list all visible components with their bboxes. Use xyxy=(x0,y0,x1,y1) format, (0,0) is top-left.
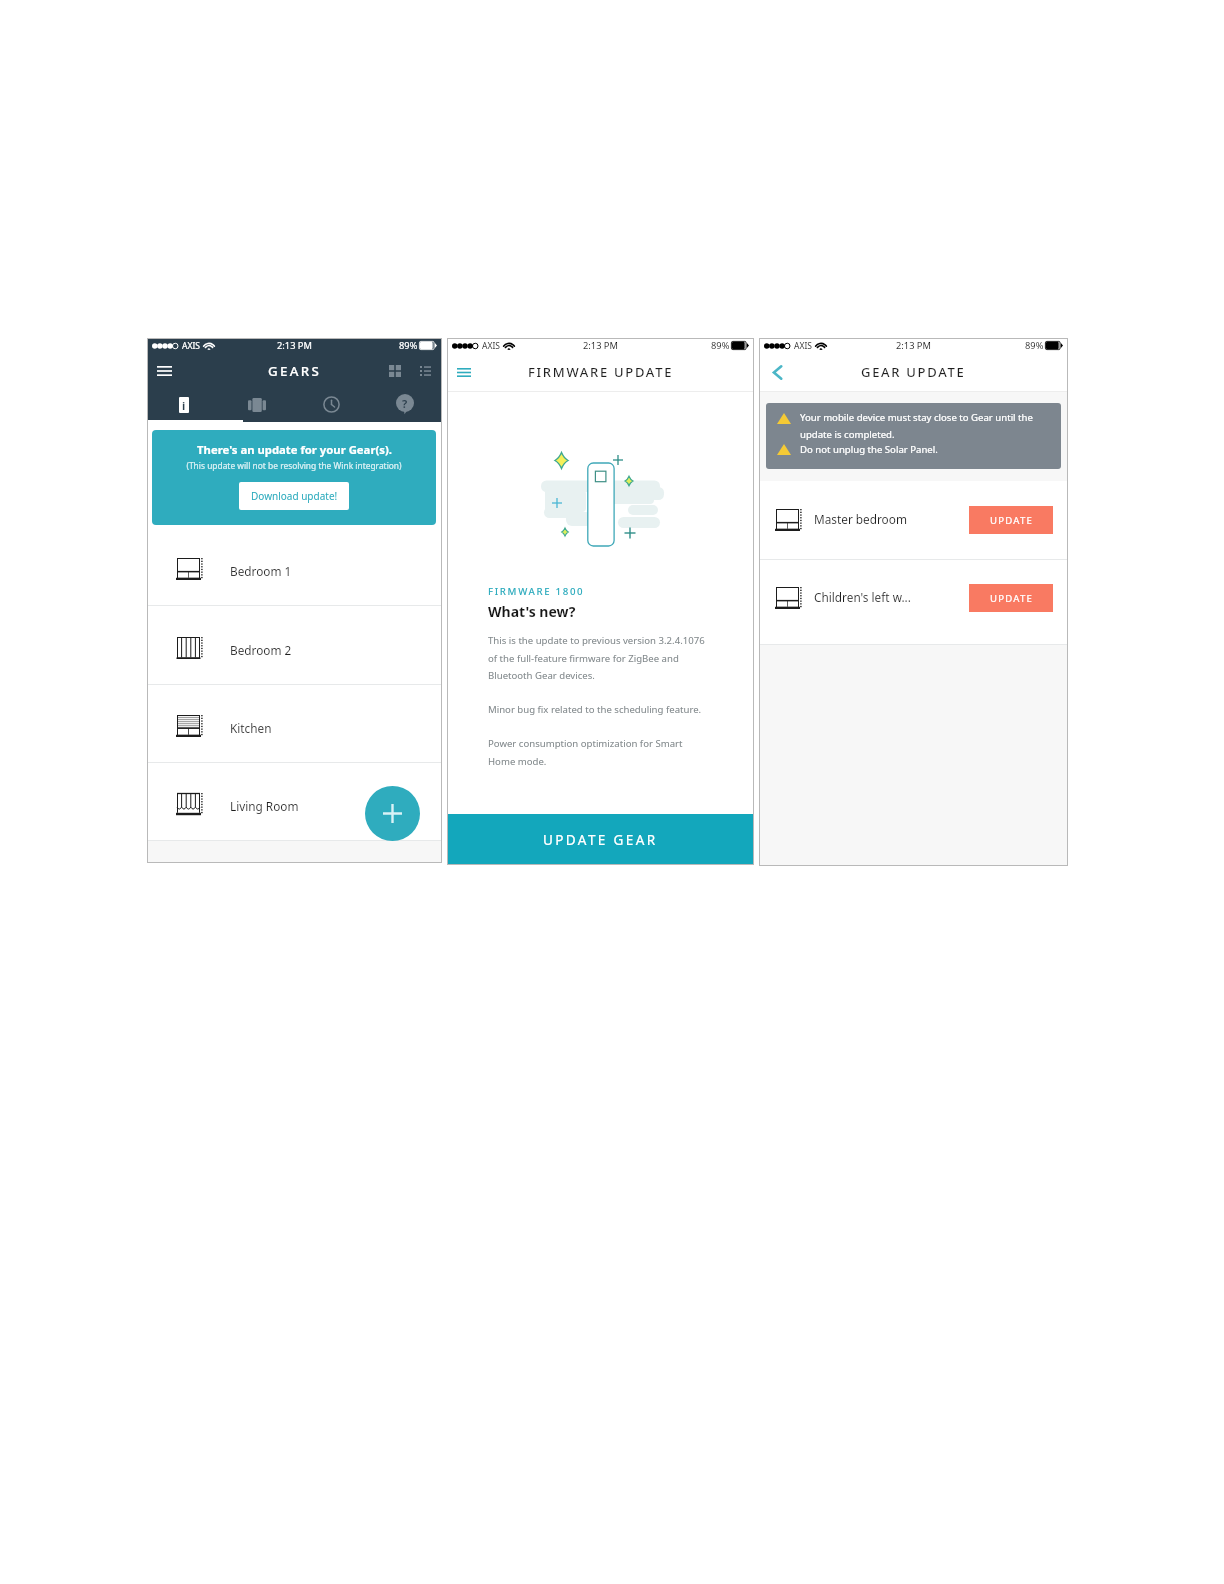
staticText: Do not unplug the Solar Panel. xyxy=(800,443,938,456)
staticText: 2:13 PM xyxy=(583,339,618,352)
button[interactable]: Living Room xyxy=(147,763,442,840)
staticText: UPDATE xyxy=(990,514,1033,527)
staticText: There's an update for your Gear(s). xyxy=(197,442,392,457)
staticText: ? xyxy=(402,396,408,411)
button[interactable]: Add gear xyxy=(365,786,420,841)
staticText: 2:13 PM xyxy=(277,339,312,352)
button[interactable]: There's an update for your Gear(s). xyxy=(152,430,436,525)
staticText: Download update! xyxy=(251,489,338,503)
staticText: 89% xyxy=(399,339,418,352)
button[interactable]: Bedroom 2 xyxy=(147,606,442,684)
staticText: i xyxy=(182,398,186,413)
button[interactable]: Back xyxy=(764,359,790,385)
staticText: (This update will not be resolving the W… xyxy=(186,460,402,471)
button[interactable]: Menu xyxy=(451,359,477,385)
staticText: What's new? xyxy=(488,602,576,621)
staticText: Your mobile device must stay close to Ge… xyxy=(800,411,1053,441)
staticText: 89% xyxy=(711,339,730,352)
staticText: UPDATE xyxy=(990,592,1033,605)
button[interactable]: Master bedroom xyxy=(759,481,1068,559)
button[interactable]: Help xyxy=(368,389,442,420)
button[interactable]: Menu xyxy=(151,358,177,384)
button[interactable]: UPDATE xyxy=(969,584,1053,612)
staticText: Bedroom 1 xyxy=(230,563,292,579)
staticText: GEARS xyxy=(268,362,321,380)
staticText: Power consumption optimization for Smart… xyxy=(488,737,696,767)
staticText: Living Room xyxy=(230,798,299,814)
button[interactable]: Schedule xyxy=(294,389,368,420)
staticText: 2:13 PM xyxy=(896,339,931,352)
button[interactable]: Info xyxy=(147,389,220,420)
staticText: Children's left w... xyxy=(814,589,911,605)
button[interactable]: Download update! xyxy=(239,482,349,510)
staticText: Bedroom 2 xyxy=(230,642,292,658)
staticText: AXIS xyxy=(482,340,500,352)
staticText: GEAR UPDATE xyxy=(861,363,966,381)
staticText: AXIS xyxy=(794,340,812,352)
button[interactable]: UPDATE xyxy=(969,506,1053,534)
staticText: This is the update to previous version 3… xyxy=(488,634,714,681)
button[interactable]: Grid view xyxy=(385,361,405,381)
staticText: Kitchen xyxy=(230,720,272,736)
button[interactable]: Bedroom 1 xyxy=(147,527,442,605)
button[interactable]: Kitchen xyxy=(147,685,442,762)
staticText: UPDATE GEAR xyxy=(543,831,658,849)
staticText: Minor bug fix related to the scheduling … xyxy=(488,703,714,716)
staticText: AXIS xyxy=(182,340,200,352)
staticText: FIRMWARE UPDATE xyxy=(528,363,674,381)
staticText: 89% xyxy=(1025,339,1044,352)
button[interactable]: UPDATE GEAR xyxy=(447,814,754,865)
button[interactable]: Children's left w... xyxy=(759,560,1068,636)
staticText: Master bedroom xyxy=(814,511,907,527)
button[interactable]: Scenes xyxy=(220,389,294,420)
button[interactable]: List view xyxy=(415,361,435,381)
staticText: FIRMWARE 1800 xyxy=(488,585,585,598)
